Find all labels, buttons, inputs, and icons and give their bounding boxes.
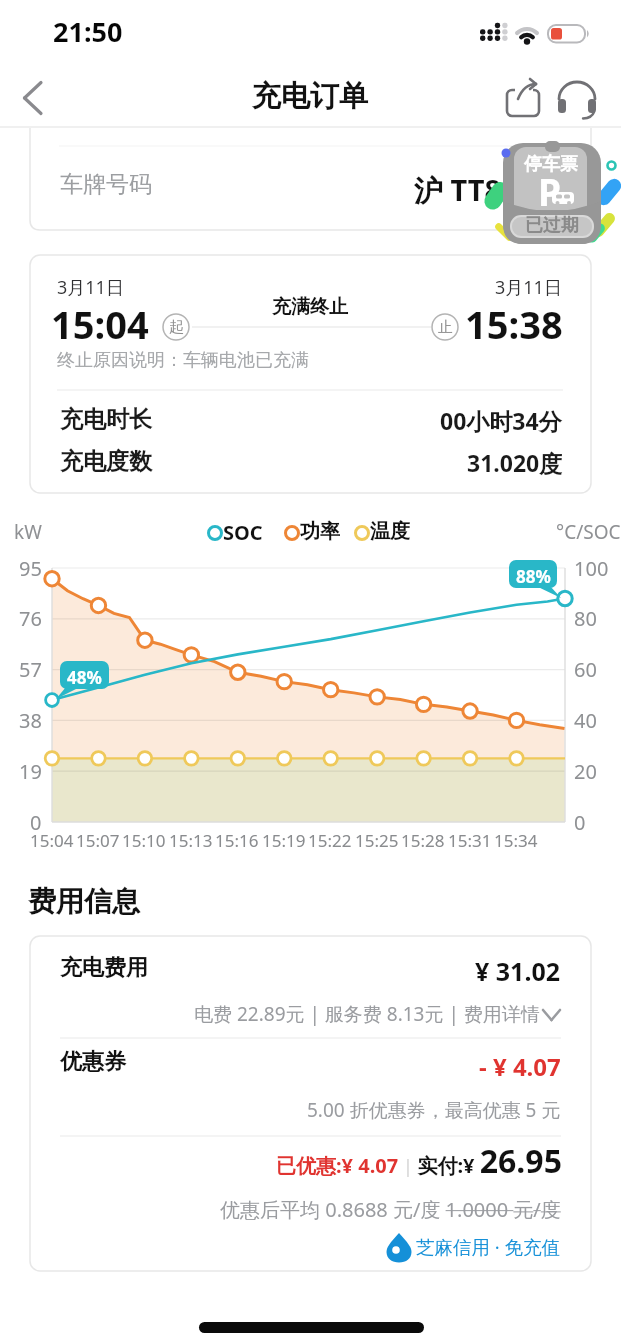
staticText: 充电时长 (60, 405, 152, 434)
staticText: 100 (574, 555, 609, 582)
staticText: 3月11日 (57, 275, 124, 300)
staticText: 15:07 (76, 829, 120, 852)
staticText: 15:22 (308, 829, 352, 852)
button[interactable] (18, 75, 62, 119)
staticText: 已优惠:¥ 4.07 | 实付:¥ 26.95 (276, 1139, 562, 1183)
staticText: 15:31 (448, 829, 492, 852)
staticText: ¥ 31.02 (475, 954, 561, 988)
staticText: 止 (438, 318, 453, 337)
button[interactable] (300, 998, 562, 1028)
staticText: °C/SOC (556, 519, 621, 545)
button[interactable] (553, 78, 599, 118)
staticText: 48% (67, 666, 102, 689)
staticText: 00小时34分 (440, 405, 562, 436)
staticText: P (538, 166, 561, 216)
staticText: 0 (574, 809, 586, 836)
staticText: 15:10 (122, 829, 166, 852)
staticText: 车牌号码 (60, 170, 152, 199)
staticText: 15:04 (30, 829, 74, 852)
staticText: kW (14, 519, 42, 545)
staticText: 80 (574, 605, 597, 632)
staticText: 15:04 (51, 298, 149, 350)
staticText: 60 (574, 656, 597, 683)
staticText: 38 (19, 707, 42, 734)
staticText: 停车票 (524, 153, 578, 176)
staticText: 95 (19, 555, 42, 582)
staticText: 沪 TT8 (414, 170, 502, 210)
staticText: 15:13 (169, 829, 213, 852)
staticText: 57 (19, 656, 42, 683)
staticText: 电费 22.89元 | 服务费 8.13元 | 费用详情 (194, 1001, 540, 1027)
button[interactable] (500, 143, 604, 247)
staticText: 31.020度 (467, 447, 563, 478)
staticText: 15:28 (401, 829, 445, 852)
staticText: 充满终止 (272, 295, 348, 319)
staticText: 3月11日 (495, 275, 562, 300)
staticText: 功率 (300, 519, 340, 544)
staticText: 15:34 (494, 829, 538, 852)
staticText: 充电度数 (60, 447, 152, 476)
staticText: 21:50 (53, 13, 123, 50)
staticText: 芝麻信用 · 免充值 (416, 1234, 561, 1259)
staticText: 20 (574, 758, 597, 785)
staticText: 已过期 (525, 214, 579, 237)
staticText: 0 (30, 809, 42, 836)
staticText: SOC (223, 519, 263, 546)
staticText: 优惠券 (60, 1048, 126, 1076)
staticText: 5.00 折优惠券，最高优惠 5 元 (307, 1097, 561, 1123)
staticText: 15:19 (262, 829, 306, 852)
staticText: 15:16 (215, 829, 259, 852)
staticText: 费用信息 (28, 884, 140, 919)
staticText: - ¥ 4.07 (479, 1050, 561, 1083)
staticText: 19 (19, 758, 42, 785)
button[interactable] (500, 78, 544, 118)
staticText: 温度 (370, 519, 410, 544)
staticText: 88% (516, 565, 551, 588)
staticText: 终止原因说明：车辆电池已充满 (57, 349, 309, 372)
staticText: 15:25 (355, 829, 399, 852)
button[interactable] (388, 1228, 564, 1258)
staticText: 15:38 (465, 298, 563, 350)
staticText: 优惠后平均 0.8688 元/度 1.0000 元/度 (220, 1196, 561, 1223)
staticText: 充电订单 (252, 78, 368, 115)
staticText: 起 (169, 318, 184, 337)
staticText: 40 (574, 707, 597, 734)
staticText: 充电费用 (60, 954, 148, 982)
staticText: 76 (19, 605, 42, 632)
